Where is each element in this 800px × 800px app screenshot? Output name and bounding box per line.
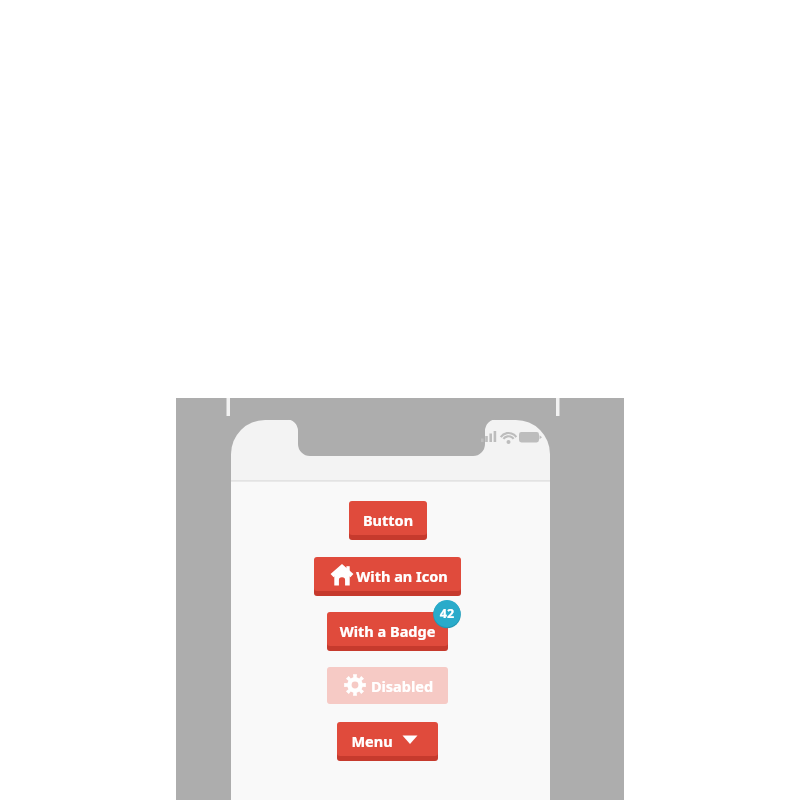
button[interactable]: Battery <box>517 429 541 442</box>
button[interactable]: With a Badge <box>327 612 448 649</box>
button[interactable]: Menu <box>337 722 438 759</box>
button[interactable]: With an Icon <box>314 557 461 594</box>
button[interactable]: Cellular signal <box>479 428 497 442</box>
button[interactable]: Wi-Fi <box>499 428 515 442</box>
button[interactable]: Disabled <box>327 667 448 704</box>
button[interactable]: Button <box>349 501 427 538</box>
